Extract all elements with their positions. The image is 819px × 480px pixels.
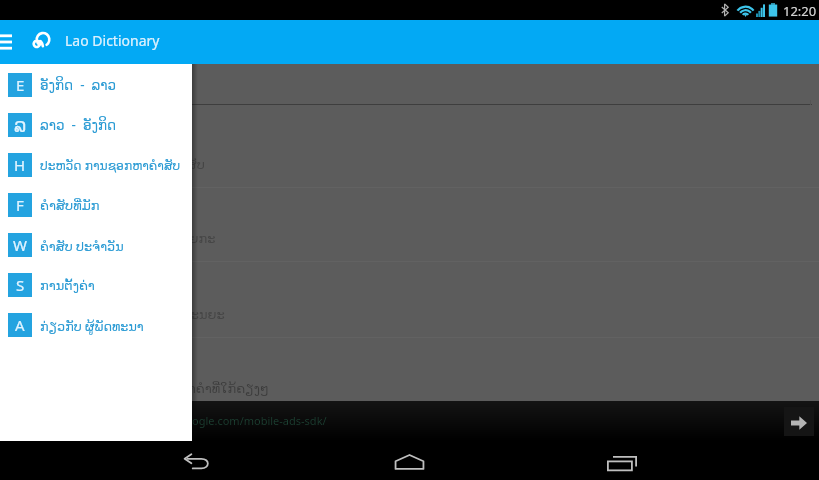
staticText: 12:20 — [783, 2, 817, 20]
button[interactable]: Open ad — [784, 407, 814, 436]
staticText: ຄຳສັບທີ່ມັກ — [40, 198, 100, 213]
staticText: H — [14, 155, 26, 175]
staticText: ຄົ້ນຫາ ຄຳສັບ — [133, 155, 205, 173]
staticText: ຄົ້ນຫາ ປະໂຫຍກະ — [118, 229, 216, 247]
button[interactable]: W — [0, 225, 192, 265]
staticText: ປະຫວັດ ການຊອກຫາຄຳສັບ — [40, 157, 181, 174]
button[interactable]: Home — [374, 441, 444, 480]
staticText: ລ — [14, 114, 27, 136]
button[interactable]: F — [0, 185, 192, 225]
staticText: ບໍ່ພົບຜົນການຄົ້ນຫາຄຳທີ່ໃກ້ຄຽງໆ — [93, 381, 269, 396]
button[interactable]: H — [0, 145, 192, 185]
staticText: ຄຳສັບ ປະຈຳວັນ — [40, 237, 124, 254]
staticText: E — [16, 75, 25, 95]
staticText: ogle.com/mobile-ads-sdk/ — [192, 413, 327, 428]
staticText: ອັງກິດ - ລາວ — [40, 76, 117, 94]
staticText: A — [15, 315, 25, 335]
button[interactable]: E — [0, 65, 192, 105]
button[interactable]: ລ — [0, 105, 192, 145]
button[interactable]: ogle.com/mobile-ads-sdk/ — [0, 401, 819, 441]
button[interactable]: Back — [160, 441, 230, 480]
staticText: Lao Dictionary — [65, 31, 160, 50]
button[interactable]: Open navigation drawer — [0, 20, 12, 64]
staticText: F — [16, 195, 24, 215]
staticText: ກ່ຽວກັບ ຜູ້ພັດທະນາ — [40, 317, 144, 334]
staticText: S — [16, 275, 25, 295]
staticText: ການຕັ້ງຄ່າ — [40, 278, 95, 293]
button[interactable]: S — [0, 265, 192, 305]
staticText: ລາວ - ອັງກິດ — [40, 116, 117, 134]
staticText: W — [13, 235, 27, 255]
button[interactable]: A — [0, 305, 192, 345]
staticText: ຄຳສັບ ແລະ ປະໂຫຍກະນຍະ — [75, 305, 225, 323]
button[interactable]: Recent apps — [588, 441, 658, 480]
